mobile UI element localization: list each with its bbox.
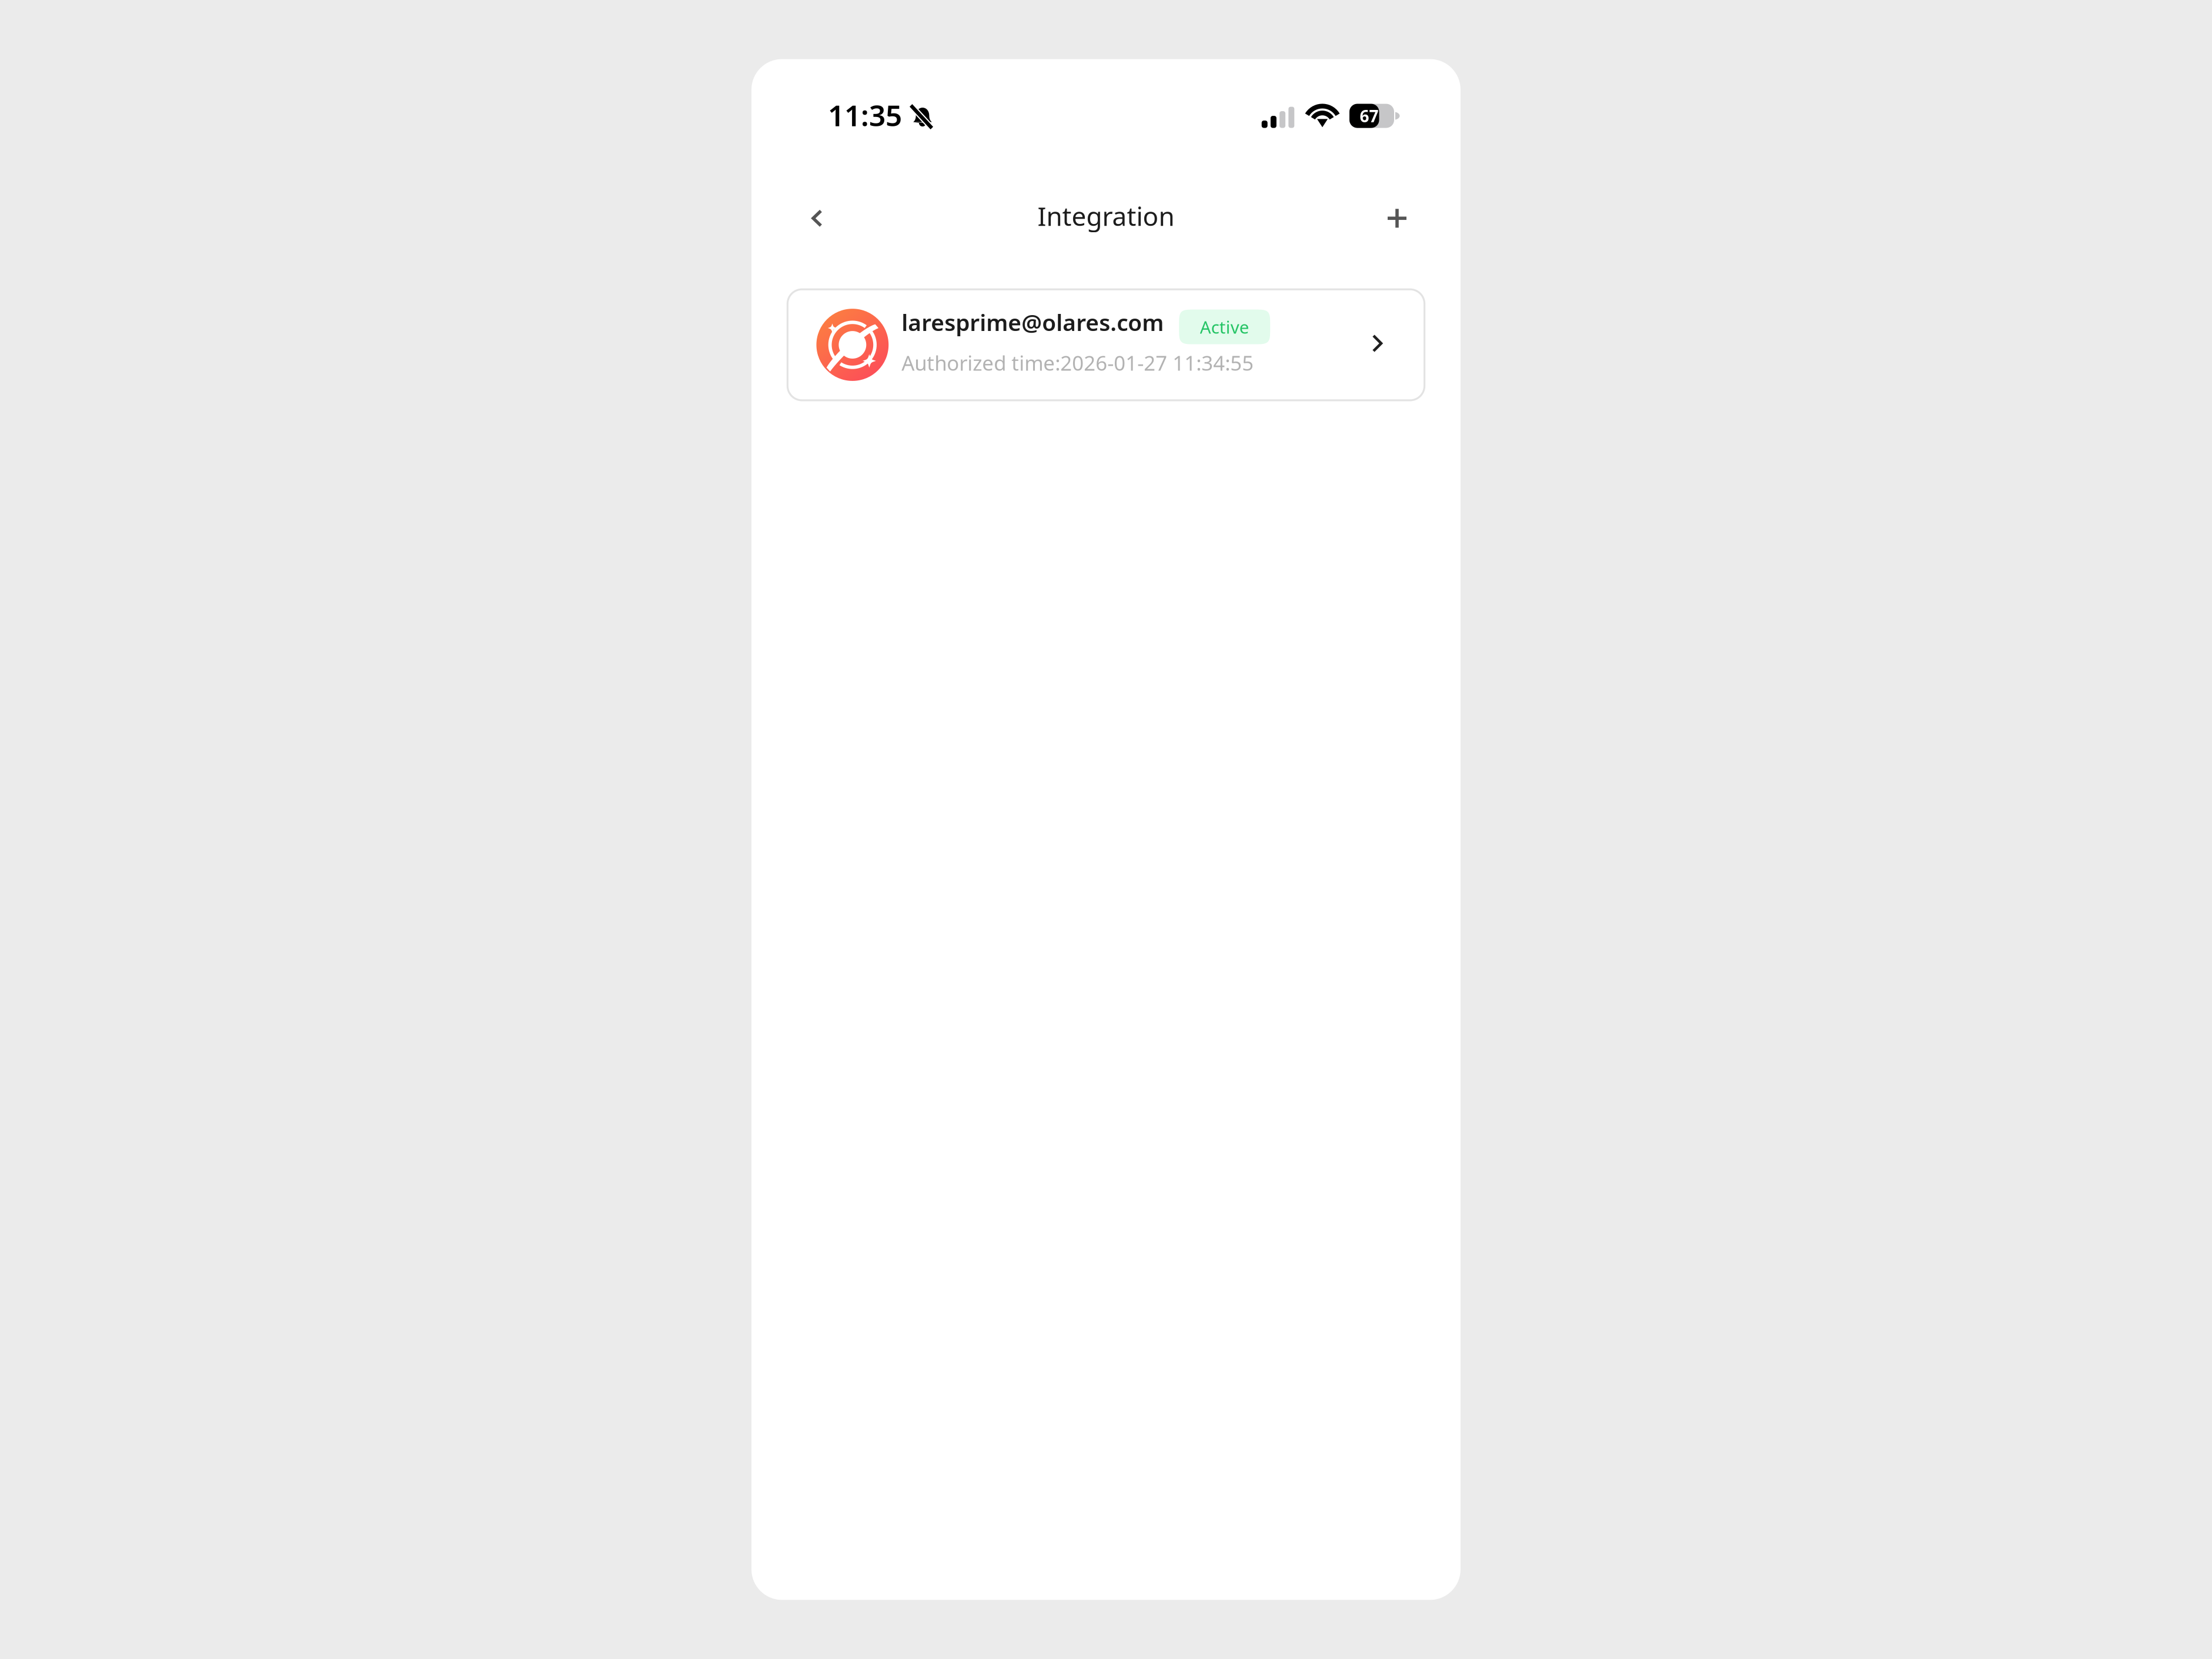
staticText: 11:35 — [828, 96, 902, 134]
staticText: Integration — [1037, 199, 1175, 233]
button[interactable]: Back — [786, 185, 843, 251]
button[interactable]: Add — [1373, 185, 1426, 251]
staticText: Active — [1200, 315, 1249, 338]
staticText: laresprime@olares.com — [901, 307, 1164, 337]
staticText: Authorized time:2026-01-27 11:34:55 — [901, 349, 1254, 376]
button[interactable]: laresprime@olares.com — [788, 289, 1425, 400]
staticText: 67 — [1360, 105, 1378, 127]
